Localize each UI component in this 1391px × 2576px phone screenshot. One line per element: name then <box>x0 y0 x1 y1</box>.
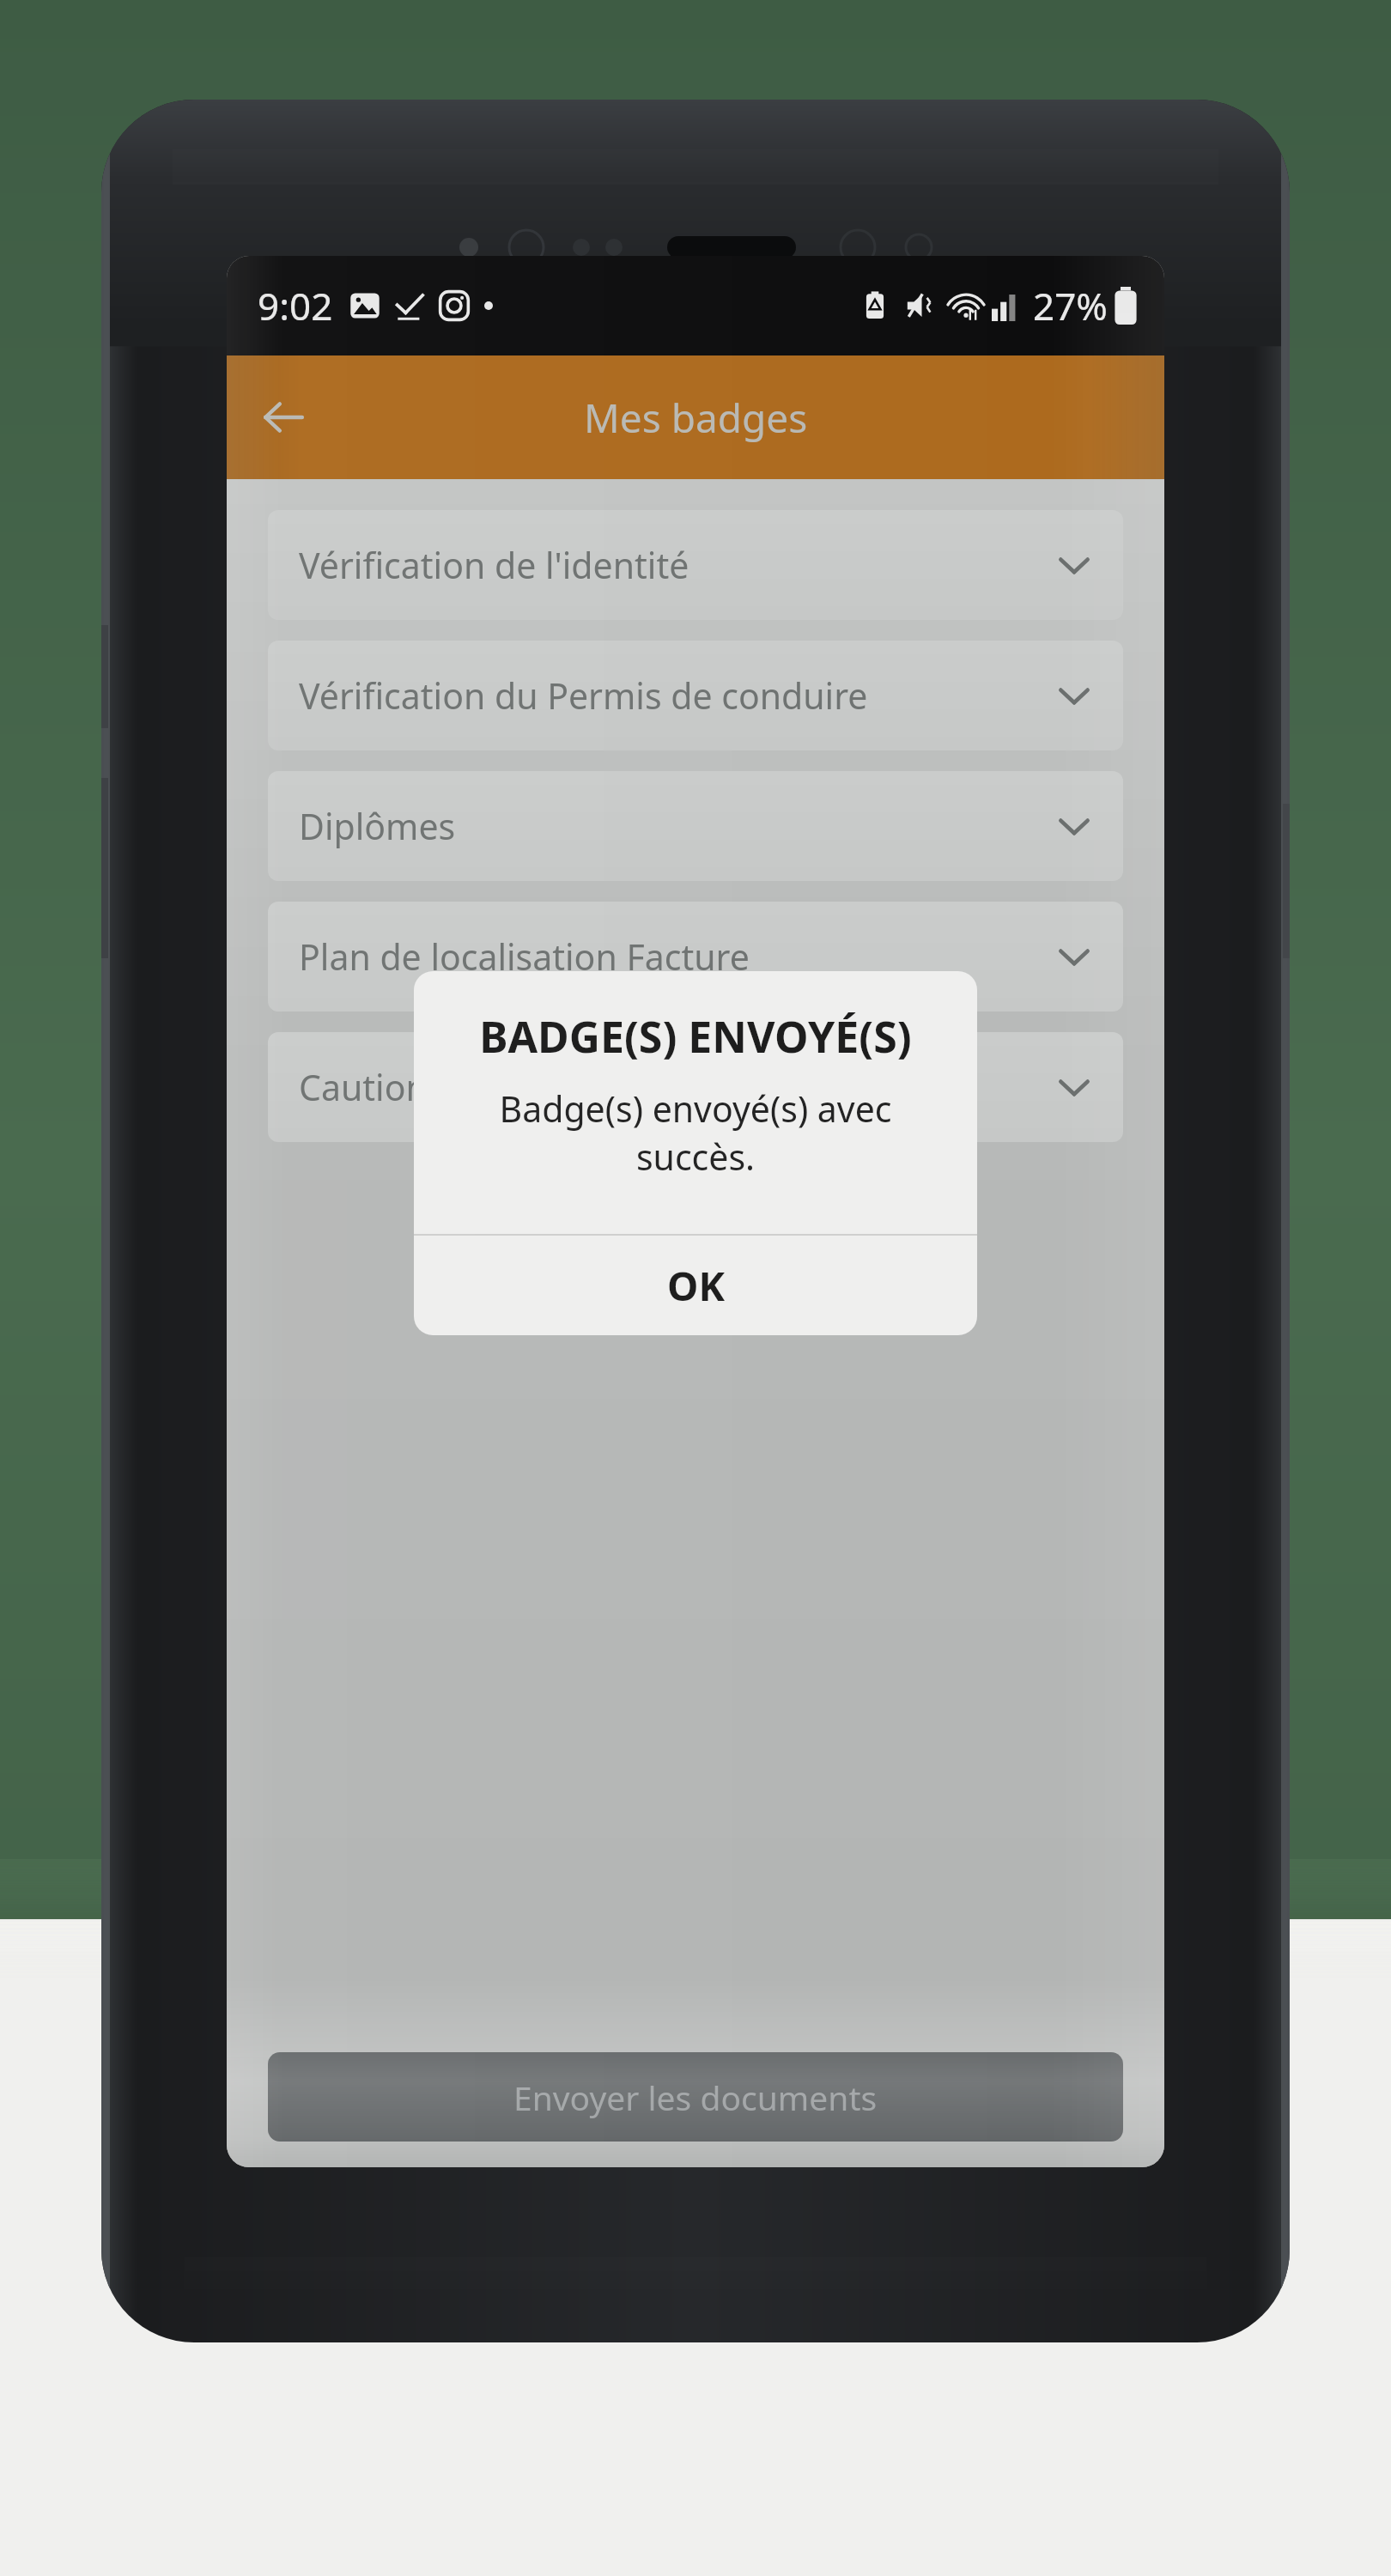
staticText: OK <box>667 1259 725 1313</box>
staticText: Envoyer les documents <box>513 2075 878 2120</box>
button[interactable]: Plan de localisation Facture <box>268 902 1123 1012</box>
button[interactable]: Envoyer les documents <box>268 2052 1123 2142</box>
button[interactable]: Vérification du Permis de conduire <box>268 641 1123 750</box>
staticText: 27% <box>1033 280 1108 331</box>
staticText: Caution morale <box>299 1063 554 1111</box>
button[interactable]: Back <box>247 381 319 453</box>
staticText: Vérification de l'identité <box>299 541 689 589</box>
staticText: Vérification du Permis de conduire <box>299 671 868 720</box>
button[interactable]: OK <box>414 1236 977 1335</box>
button[interactable]: Vérification de l'identité <box>268 510 1123 620</box>
staticText: Mes badges <box>584 391 808 445</box>
staticText: BADGE(S) ENVOYÉ(S) <box>414 1007 977 1066</box>
button[interactable]: Caution morale <box>268 1032 1123 1142</box>
staticText: Badge(s) envoyé(s) avec succès. <box>438 1084 953 1181</box>
button[interactable]: Diplômes <box>268 771 1123 881</box>
staticText: Diplômes <box>299 802 456 850</box>
staticText: 9:02 <box>258 280 333 331</box>
staticText: Plan de localisation Facture <box>299 933 750 981</box>
